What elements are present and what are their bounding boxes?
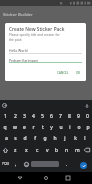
staticText: s	[14, 135, 17, 142]
staticText: q	[3, 124, 7, 131]
staticText: 3	[23, 113, 26, 120]
staticText: ?123	[2, 162, 9, 166]
button[interactable]: q	[0, 122, 10, 133]
button[interactable]: f	[30, 133, 40, 144]
staticText: r	[32, 124, 35, 131]
button[interactable]: Google	[2, 103, 7, 108]
staticText: 0	[86, 113, 89, 120]
button[interactable]: i	[65, 122, 74, 133]
button[interactable]: Shift	[0, 144, 10, 156]
staticText: z	[14, 147, 17, 154]
staticText: b	[55, 147, 59, 154]
button[interactable]: z	[10, 144, 21, 156]
button[interactable]: Enter	[74, 156, 92, 172]
staticText: Please specify title and creator for the…	[9, 33, 65, 42]
staticText: x	[25, 147, 28, 154]
staticText: l	[84, 135, 86, 142]
staticText: w	[13, 124, 17, 131]
button[interactable]: x	[21, 144, 32, 156]
button[interactable]: k	[70, 133, 80, 144]
button[interactable]: t	[38, 122, 47, 133]
staticText: ,	[15, 161, 17, 167]
staticText: a	[5, 135, 8, 142]
staticText: 7	[59, 113, 62, 120]
button[interactable]: 3	[20, 111, 29, 122]
staticText: j	[64, 135, 66, 142]
staticText: m	[75, 147, 80, 154]
button[interactable]: v	[42, 144, 52, 156]
button[interactable]: h	[50, 133, 60, 144]
button[interactable]: Recents	[62, 172, 74, 184]
button[interactable]: 5	[38, 111, 47, 122]
button[interactable]: s	[11, 133, 20, 144]
button[interactable]: g	[40, 133, 50, 144]
button[interactable]: Voice input	[84, 103, 90, 109]
button[interactable]: 6	[47, 111, 56, 122]
button[interactable]: r	[29, 122, 38, 133]
button[interactable]: c	[32, 144, 42, 156]
staticText: 9	[77, 113, 80, 120]
staticText: Pedram Karimzaei	[9, 58, 39, 63]
button[interactable]: CANCEL	[55, 70, 71, 76]
button[interactable]: u	[56, 122, 65, 133]
staticText: e	[23, 124, 26, 131]
button[interactable]: o	[74, 122, 83, 133]
button[interactable]: 2	[10, 111, 20, 122]
staticText: OK	[76, 71, 81, 75]
button[interactable]: 7	[56, 111, 65, 122]
button[interactable]: j	[60, 133, 70, 144]
button[interactable]: OK	[74, 70, 83, 76]
staticText: 6	[50, 113, 53, 120]
button[interactable]: 8	[65, 111, 74, 122]
button[interactable]: w	[10, 122, 20, 133]
staticText: v	[46, 147, 49, 154]
staticText: p	[86, 124, 90, 131]
button[interactable]: b	[52, 144, 62, 156]
staticText: 1	[4, 113, 7, 120]
button[interactable]: 9	[74, 111, 83, 122]
button[interactable]: a	[2, 133, 11, 144]
button[interactable]: 0	[83, 111, 92, 122]
button[interactable]: ?123	[0, 156, 10, 172]
staticText: 5	[41, 113, 44, 120]
staticText: 4	[32, 113, 35, 120]
staticText: 2	[14, 113, 17, 120]
button[interactable]: m	[72, 144, 82, 156]
button[interactable]: Space	[31, 161, 59, 167]
staticText: c	[36, 147, 39, 154]
button[interactable]: 1	[0, 111, 10, 122]
staticText: n	[65, 147, 69, 154]
staticText: t	[42, 124, 44, 131]
button[interactable]: l	[80, 133, 90, 144]
button[interactable]: ,	[10, 156, 21, 172]
button[interactable]: Home	[40, 172, 52, 184]
staticText: .	[66, 161, 68, 167]
staticText: Create New Sticker Pack	[9, 26, 65, 33]
button[interactable]: Back	[14, 172, 26, 184]
button[interactable]: e	[20, 122, 29, 133]
button[interactable]: n	[62, 144, 72, 156]
staticText: Hello World	[9, 48, 28, 53]
staticText: Sticker Builder	[3, 11, 33, 17]
button[interactable]: d	[20, 133, 30, 144]
staticText: o	[77, 124, 81, 131]
staticText: y	[50, 124, 53, 131]
button[interactable]: 4	[29, 111, 38, 122]
staticText: d	[23, 135, 27, 142]
button[interactable]: Backspace	[82, 144, 92, 156]
button[interactable]: .	[59, 156, 74, 172]
staticText: u	[59, 124, 63, 131]
staticText: i	[69, 124, 71, 131]
staticText: f	[34, 135, 36, 142]
staticText: CANCEL	[57, 71, 69, 75]
staticText: k	[74, 135, 77, 142]
staticText: g	[43, 135, 47, 142]
button[interactable]: Emoji	[21, 156, 31, 172]
button[interactable]: p	[83, 122, 92, 133]
staticText: h	[53, 135, 57, 142]
button[interactable]: y	[47, 122, 56, 133]
staticText: 8	[68, 113, 71, 120]
